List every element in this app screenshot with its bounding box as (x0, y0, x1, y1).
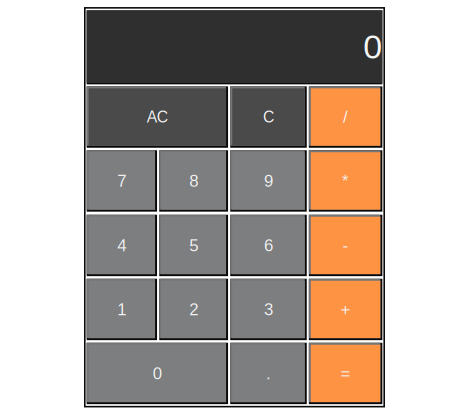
button[interactable]: 1 (87, 279, 157, 340)
staticText: + (341, 300, 351, 319)
button[interactable]: 6 (230, 215, 307, 276)
staticText: 0 (153, 364, 162, 383)
staticText: = (341, 364, 351, 383)
staticText: 4 (117, 236, 126, 255)
staticText: 1 (117, 300, 126, 319)
staticText: . (266, 364, 271, 383)
staticText: 9 (264, 172, 273, 190)
staticText: AC (147, 108, 168, 126)
button[interactable]: + (309, 279, 382, 340)
staticText: - (343, 236, 349, 255)
button[interactable]: C (230, 86, 307, 148)
staticText: / (343, 108, 348, 126)
button[interactable]: 3 (230, 279, 307, 340)
staticText: 6 (264, 236, 273, 255)
button[interactable]: 5 (159, 215, 228, 276)
staticText: 0 (363, 28, 382, 66)
button[interactable]: 7 (87, 150, 157, 212)
button[interactable]: 9 (230, 150, 307, 212)
staticText: 8 (189, 172, 198, 190)
staticText: 2 (189, 300, 198, 319)
staticText: 5 (189, 236, 198, 255)
button[interactable]: 4 (87, 215, 157, 276)
button[interactable]: AC (87, 86, 228, 148)
button[interactable]: 2 (159, 279, 228, 340)
button[interactable]: / (309, 86, 382, 148)
button[interactable]: * (309, 150, 382, 212)
staticText: * (342, 172, 349, 190)
button[interactable]: 8 (159, 150, 228, 212)
button[interactable]: . (230, 343, 307, 404)
button[interactable]: 0 (87, 343, 228, 404)
staticText: 3 (264, 300, 273, 319)
staticText: 7 (117, 172, 126, 190)
button[interactable]: = (309, 343, 382, 404)
button[interactable]: - (309, 215, 382, 276)
staticText: C (263, 108, 274, 126)
